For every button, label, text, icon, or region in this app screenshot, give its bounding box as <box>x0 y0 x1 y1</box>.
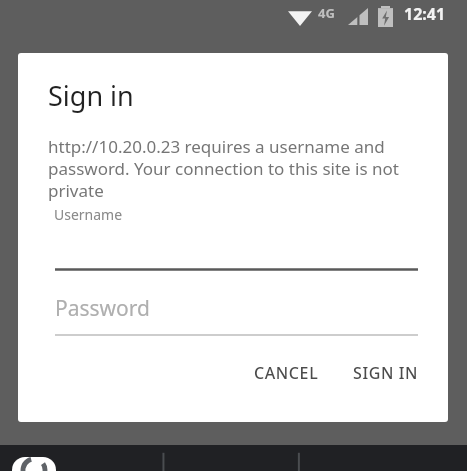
button[interactable]: Password <box>48 290 418 336</box>
staticText: http://10.20.0.23 requires a username an… <box>48 135 422 202</box>
staticText: Username <box>54 205 123 224</box>
button[interactable]: CANCEL <box>240 354 333 392</box>
button[interactable]: Google search <box>12 457 56 471</box>
staticText: SIGN IN <box>353 362 418 384</box>
staticText: 4G <box>318 4 335 22</box>
staticText: Sign in <box>48 77 134 114</box>
staticText: 12:41 <box>404 3 446 25</box>
button[interactable]: Username <box>48 205 418 271</box>
button[interactable]: SIGN IN <box>339 354 432 392</box>
staticText: Password <box>55 294 150 323</box>
staticText: CANCEL <box>254 362 319 384</box>
